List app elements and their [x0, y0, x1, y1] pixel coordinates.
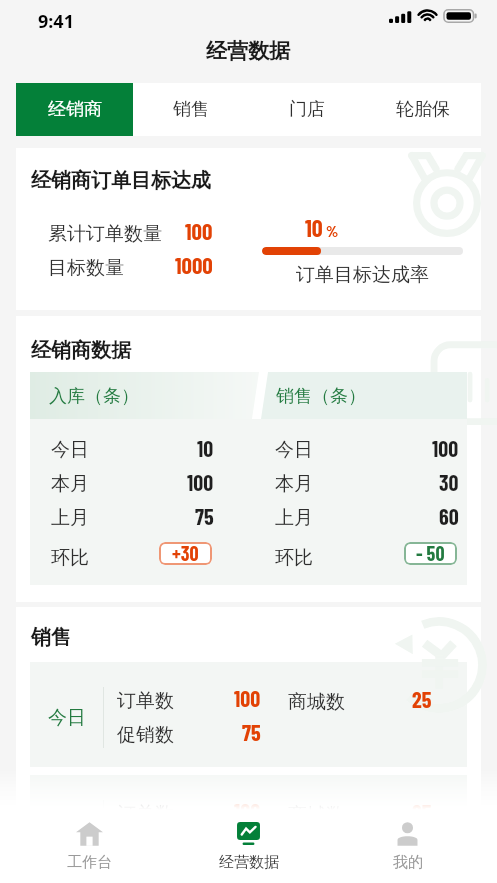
staticText: 今日: [48, 706, 86, 730]
staticText: 75: [242, 719, 261, 745]
staticText: 环比: [51, 546, 89, 570]
staticText: 入库（条）: [49, 385, 139, 408]
staticText: 9:41: [38, 9, 74, 34]
button[interactable]: 经营数据: [169, 810, 328, 883]
button[interactable]: 门店: [249, 83, 365, 136]
staticText: 订单目标达成率: [262, 263, 463, 287]
staticText: 累计订单数量: [48, 222, 162, 246]
staticText: 100: [187, 469, 214, 495]
button[interactable]: 我的: [328, 810, 487, 883]
staticText: 75: [195, 503, 214, 529]
staticText: 门店: [289, 98, 325, 121]
staticText: 100: [234, 798, 261, 824]
staticText: 上月: [51, 506, 89, 530]
button[interactable]: 销售: [133, 83, 249, 136]
staticText: 今日: [48, 819, 86, 843]
staticText: 销售: [173, 98, 209, 121]
staticText: - 50: [416, 542, 445, 564]
staticText: 订单数: [117, 689, 174, 713]
button[interactable]: 轮胎保: [365, 83, 481, 136]
staticText: %: [326, 221, 339, 240]
staticText: 经销商数据: [31, 338, 131, 363]
staticText: 环比: [275, 546, 313, 570]
staticText: 75: [242, 832, 261, 858]
staticText: 100: [432, 435, 459, 461]
staticText: 促销数: [117, 723, 174, 747]
staticText: 上月: [275, 506, 313, 530]
staticText: 100: [185, 217, 213, 245]
staticText: 轮胎保: [396, 98, 450, 121]
staticText: 今日: [275, 438, 313, 462]
staticText: 我的: [393, 853, 423, 872]
staticText: 60: [439, 503, 459, 529]
staticText: +30: [172, 542, 199, 564]
other: 工作台: [76, 821, 103, 847]
other: 我的: [394, 821, 421, 847]
staticText: 工作台: [67, 853, 112, 872]
other: 经营数据: [235, 821, 262, 847]
staticText: 100: [234, 685, 261, 711]
staticText: 25: [412, 799, 432, 825]
staticText: 目标数量: [48, 256, 124, 280]
staticText: 10: [305, 213, 323, 242]
button[interactable]: 经销商: [16, 83, 133, 136]
staticText: 经销商: [48, 98, 102, 121]
staticText: 今日: [51, 438, 89, 462]
staticText: 商城数: [288, 690, 345, 714]
staticText: 1000: [175, 251, 213, 279]
staticText: 本月: [51, 472, 89, 496]
staticText: 经营数据: [206, 38, 290, 64]
staticText: 本月: [275, 472, 313, 496]
staticText: 10: [197, 435, 214, 461]
staticText: 25: [412, 686, 432, 712]
staticText: 销售（条）: [276, 385, 366, 408]
staticText: 经销商订单目标达成: [31, 168, 211, 193]
staticText: 30: [439, 469, 459, 495]
button[interactable]: 工作台: [10, 810, 169, 883]
staticText: 销售: [31, 625, 71, 650]
staticText: 经营数据: [219, 853, 279, 872]
